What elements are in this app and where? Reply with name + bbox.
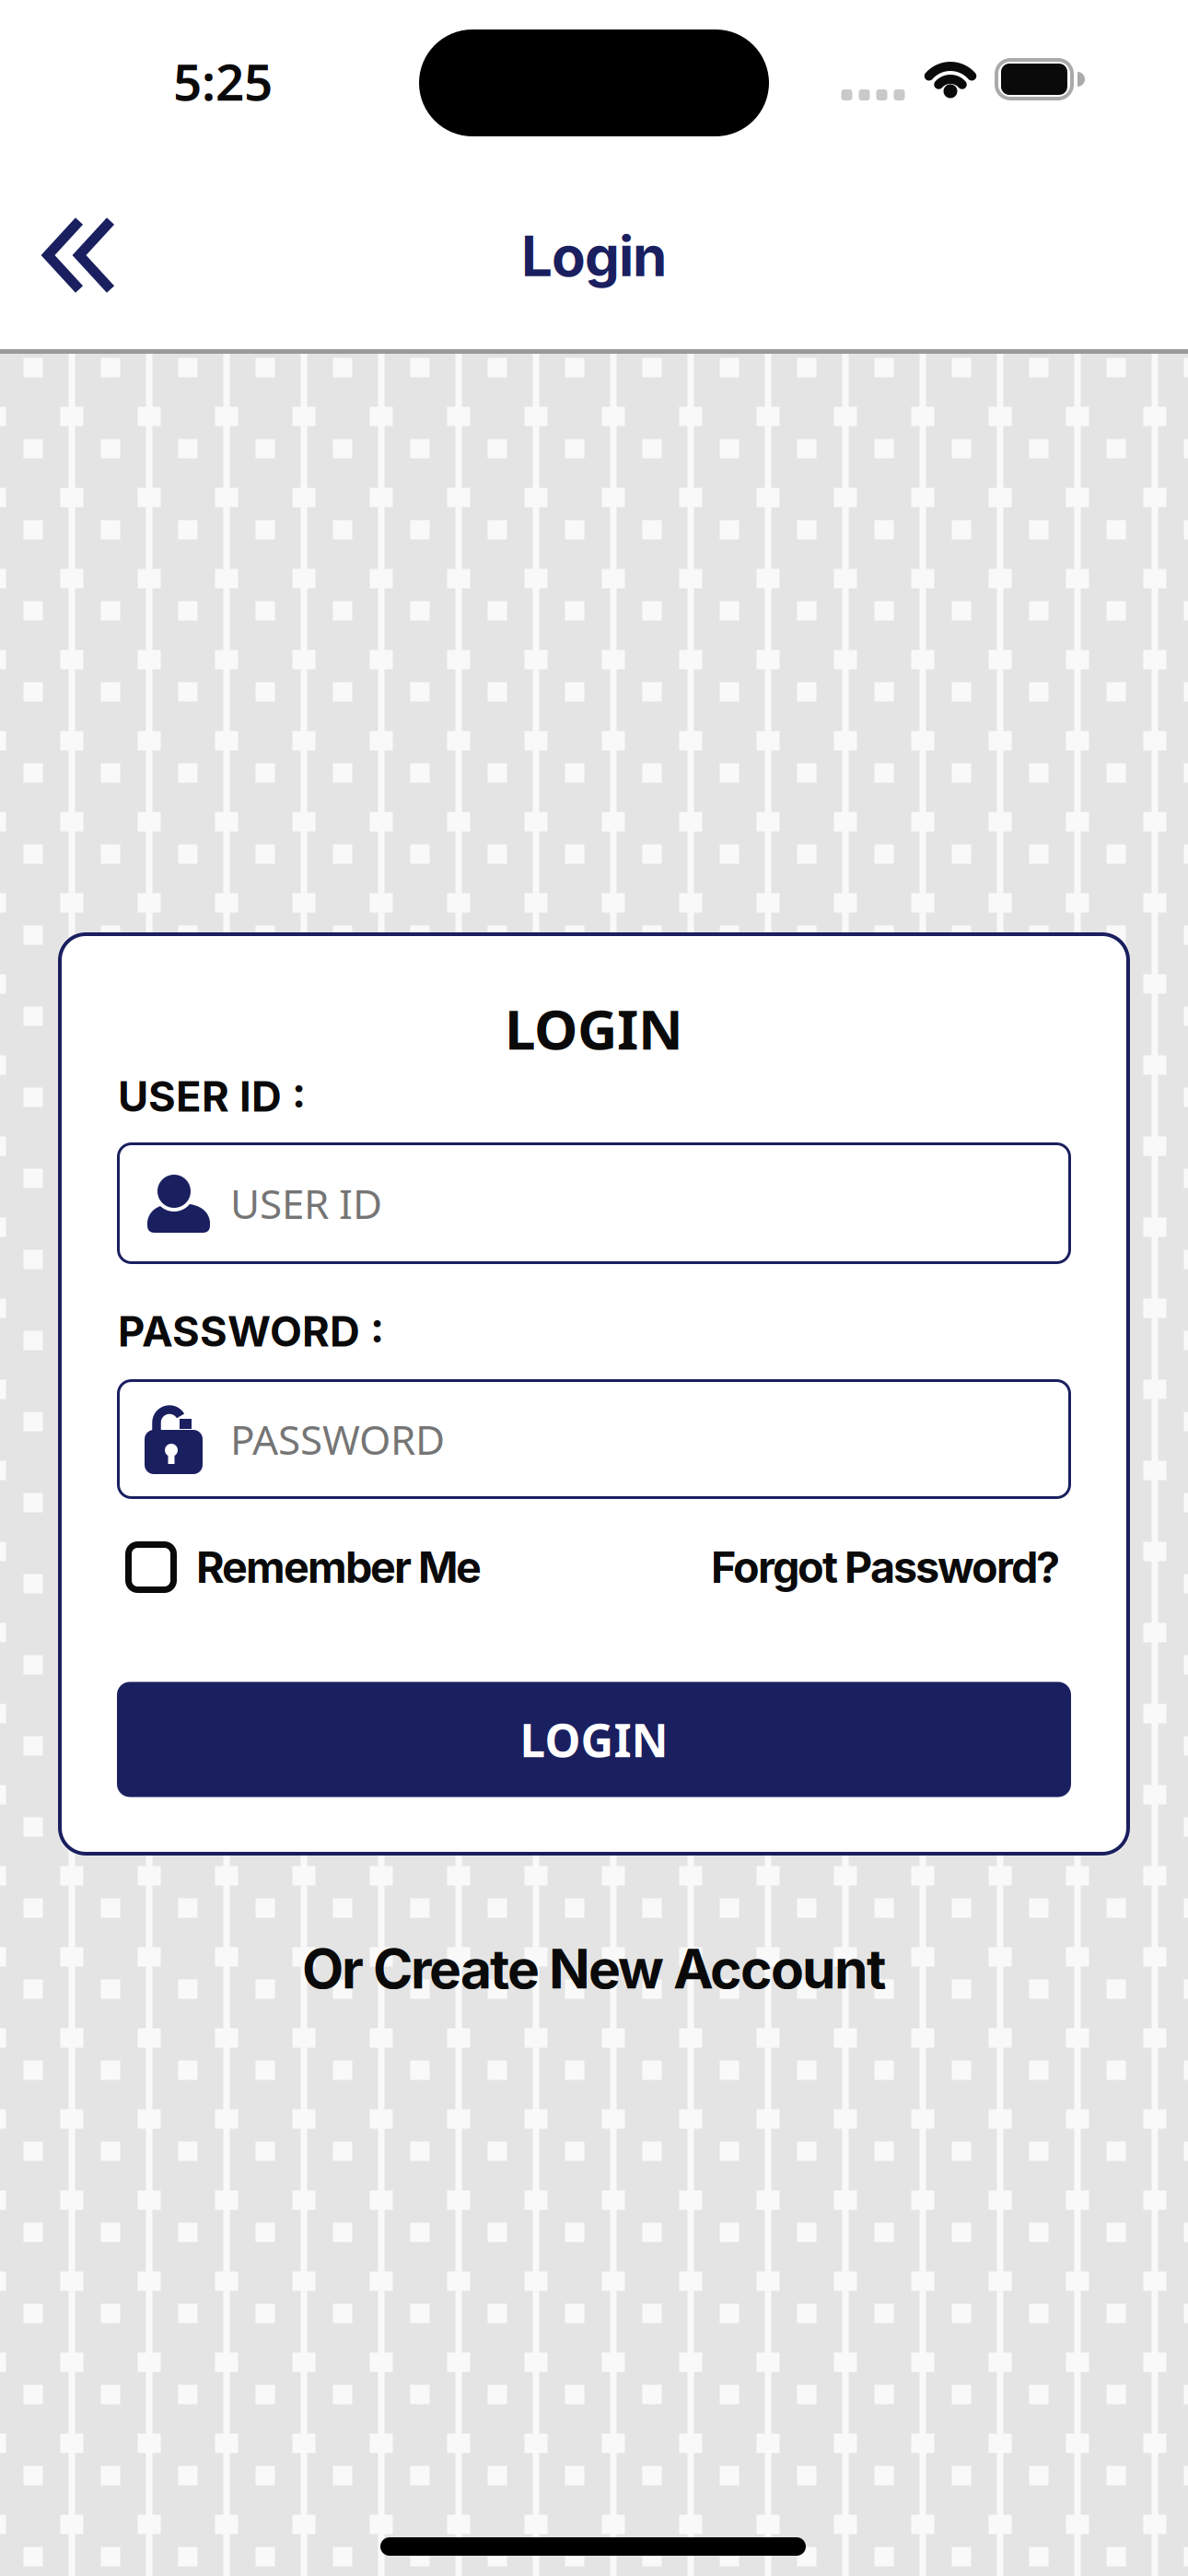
button[interactable]: Forgot Password? xyxy=(600,1541,1060,1593)
staticText: PASSWORD xyxy=(230,1412,445,1466)
staticText: Remember Me xyxy=(196,1541,482,1593)
button[interactable]: User ID xyxy=(117,1142,1071,1264)
staticText: LOGIN xyxy=(520,1709,668,1770)
staticText: LOGIN xyxy=(505,992,683,1065)
button[interactable]: LOGIN xyxy=(117,1682,1071,1797)
staticText: 5:25 xyxy=(173,48,273,115)
staticText: USER ID xyxy=(230,1176,382,1230)
staticText: Login xyxy=(521,223,667,290)
staticText: Forgot Password? xyxy=(711,1541,1060,1593)
button[interactable]: Or Create New Account xyxy=(302,1936,886,2002)
staticText: USER ID : xyxy=(118,1071,306,1122)
staticText: PASSWORD : xyxy=(118,1306,384,1357)
button[interactable]: Back xyxy=(41,216,115,295)
staticText: Or Create New Account xyxy=(302,1936,886,2002)
button[interactable]: Password xyxy=(117,1379,1071,1499)
button[interactable]: Remember Me xyxy=(125,1540,604,1595)
